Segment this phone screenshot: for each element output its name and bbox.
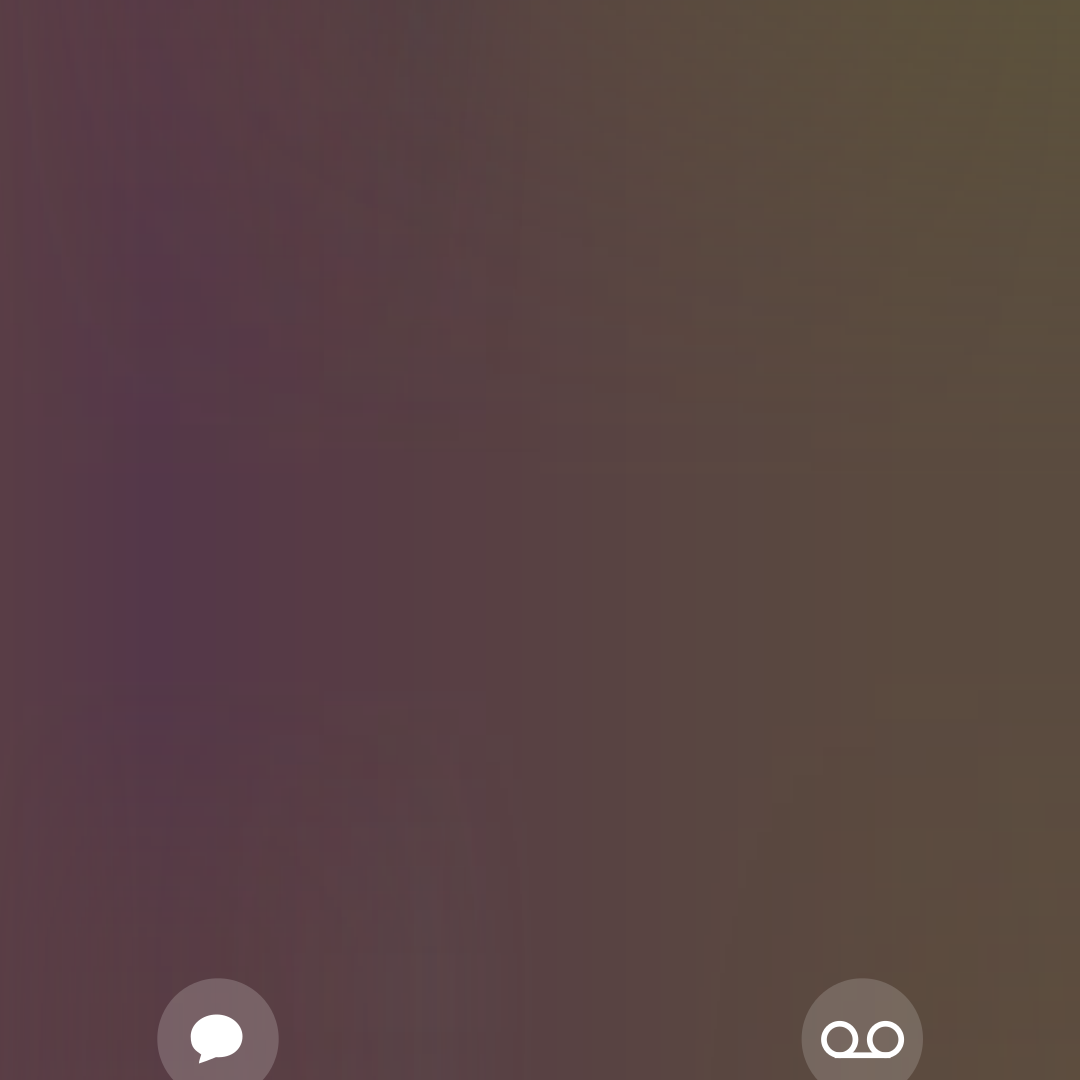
button[interactable]: Message [157,978,279,1080]
button[interactable]: Remind Me [802,978,923,1080]
